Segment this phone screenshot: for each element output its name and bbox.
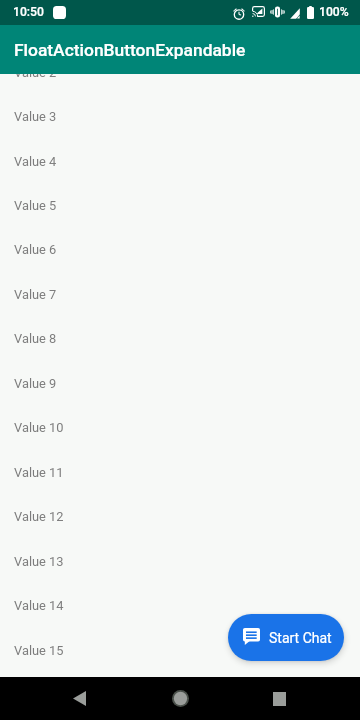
button[interactable]: Start Chat xyxy=(228,614,344,661)
button[interactable]: Value 8 xyxy=(0,316,360,360)
button[interactable]: Value 11 xyxy=(0,450,360,494)
staticText: Value 11 xyxy=(14,465,64,480)
staticText: Value 6 xyxy=(14,242,57,257)
staticText: Value 10 xyxy=(14,420,64,435)
button[interactable]: Recent apps xyxy=(259,679,299,719)
staticText: 100% xyxy=(319,5,349,19)
button[interactable]: Back xyxy=(59,678,99,718)
staticText: 10:50 xyxy=(13,5,44,19)
button[interactable]: Value 5 xyxy=(0,183,360,227)
button[interactable]: Value 14 xyxy=(0,583,360,627)
button[interactable]: Value 12 xyxy=(0,494,360,538)
staticText: Value 12 xyxy=(14,509,64,524)
button[interactable]: Home xyxy=(160,678,200,718)
staticText: FloatActionButtonExpandable xyxy=(14,40,246,60)
staticText: Value 14 xyxy=(14,598,64,613)
button[interactable]: Value 4 xyxy=(0,139,360,183)
button[interactable]: Value 13 xyxy=(0,539,360,583)
staticText: Value 7 xyxy=(14,287,57,302)
button[interactable]: Value 3 xyxy=(0,94,360,138)
button[interactable]: Value 16 xyxy=(0,672,360,716)
staticText: Start Chat xyxy=(269,630,332,646)
staticText: Value 4 xyxy=(14,154,57,169)
staticText: Value 9 xyxy=(14,376,57,391)
button[interactable]: Value 9 xyxy=(0,361,360,405)
button[interactable]: Value 15 xyxy=(0,628,360,672)
staticText: Value 8 xyxy=(14,331,57,346)
staticText: Value 3 xyxy=(14,109,57,124)
staticText: Value 13 xyxy=(14,554,64,569)
button[interactable]: Value 10 xyxy=(0,405,360,449)
staticText: Value 15 xyxy=(14,643,64,658)
staticText: Value 5 xyxy=(14,198,57,213)
button[interactable]: Value 6 xyxy=(0,227,360,271)
button[interactable]: Value 2 xyxy=(0,50,360,94)
button[interactable]: Value 7 xyxy=(0,272,360,316)
staticText: Value 2 xyxy=(14,65,57,80)
